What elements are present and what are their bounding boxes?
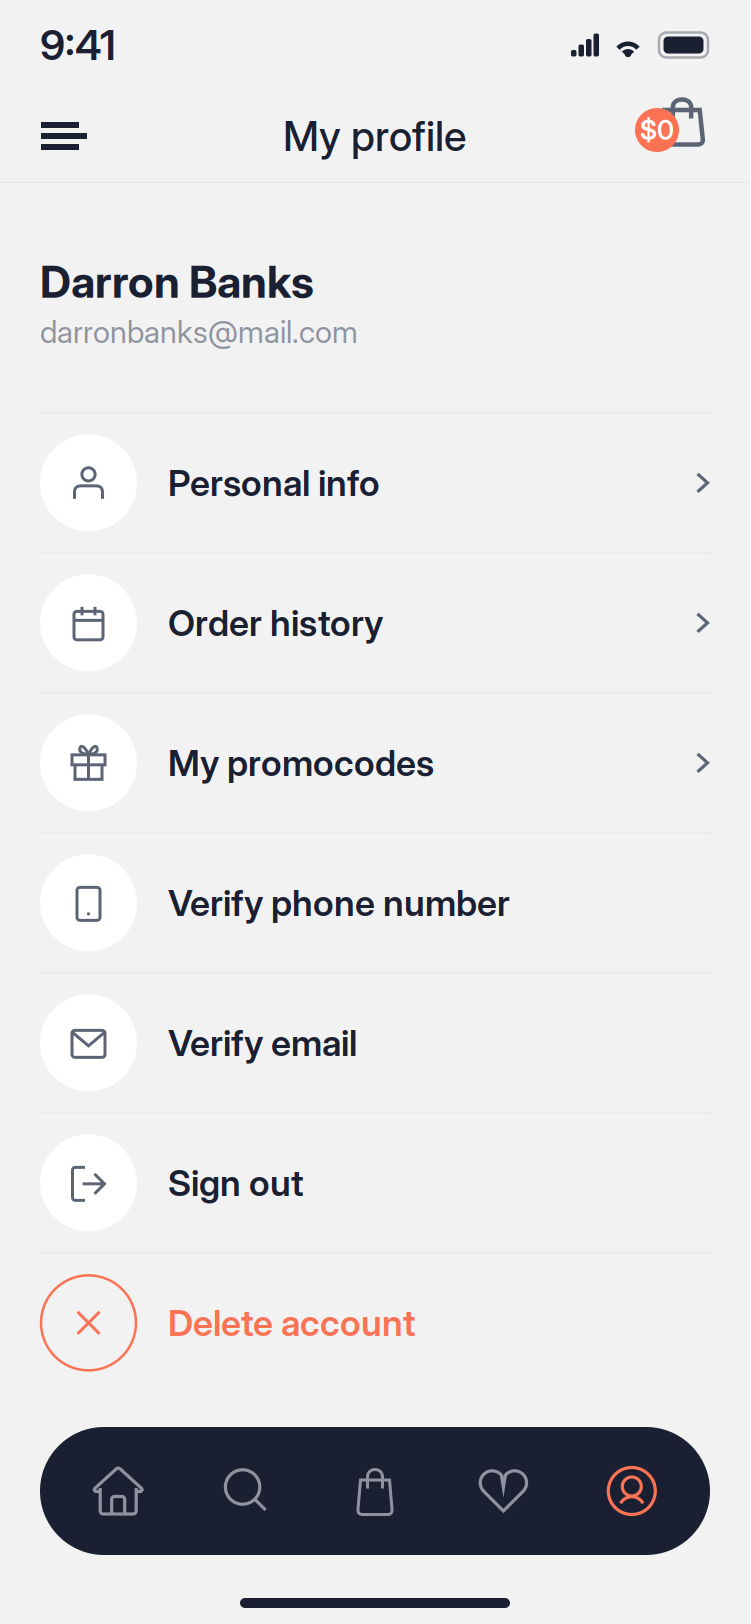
- button[interactable]: My promocodes: [40, 693, 710, 832]
- button[interactable]: Delete account: [40, 1253, 710, 1392]
- button[interactable]: Sign out: [40, 1113, 710, 1252]
- button[interactable]: Favorites: [439, 1427, 568, 1555]
- button[interactable]: Profile: [568, 1427, 696, 1555]
- staticText: My profile: [283, 111, 467, 161]
- staticText: Verify email: [168, 1021, 357, 1065]
- button[interactable]: Verify phone number: [40, 833, 710, 972]
- button[interactable]: Verify email: [40, 973, 710, 1112]
- staticText: Verify phone number: [168, 881, 510, 925]
- staticText: 9:41: [40, 20, 116, 70]
- button[interactable]: Bag: [311, 1427, 439, 1555]
- button[interactable]: Cart: [626, 90, 712, 182]
- staticText: My promocodes: [168, 741, 434, 785]
- button[interactable]: Home: [54, 1427, 182, 1555]
- staticText: Darron Banks: [40, 255, 314, 308]
- button[interactable]: Search: [182, 1427, 311, 1555]
- button[interactable]: Order history: [40, 553, 710, 692]
- button[interactable]: Personal info: [40, 413, 710, 552]
- button[interactable]: Menu: [38, 90, 124, 182]
- staticText: Order history: [168, 601, 383, 645]
- staticText: $0: [640, 114, 674, 146]
- staticText: Sign out: [168, 1161, 304, 1205]
- staticText: Delete account: [168, 1301, 416, 1345]
- staticText: Personal info: [168, 461, 380, 505]
- staticText: darronbanks@mail.com: [40, 313, 358, 350]
